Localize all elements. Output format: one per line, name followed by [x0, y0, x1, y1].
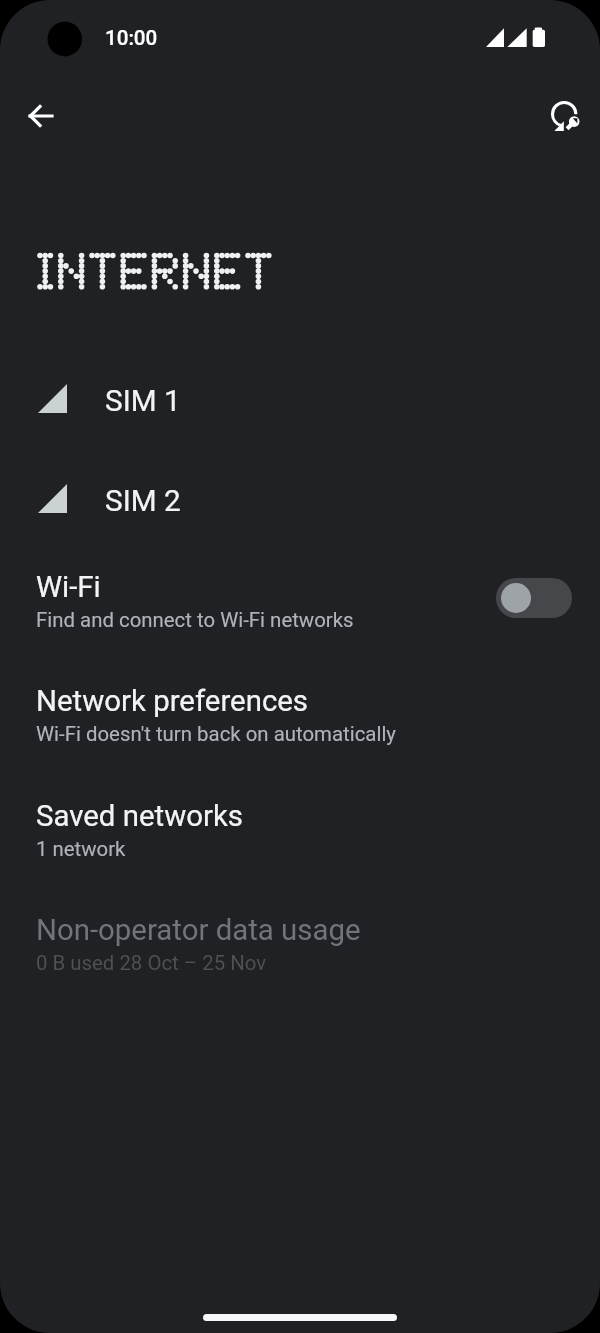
- staticText: 10:00: [105, 26, 158, 50]
- button[interactable]: Saved networks: [0, 776, 600, 881]
- staticText: Non-operator data usage: [36, 913, 361, 947]
- staticText: 1 network: [36, 837, 126, 861]
- staticText: Saved networks: [36, 799, 244, 833]
- button[interactable]: Wi-Fi toggle: [496, 578, 572, 618]
- button[interactable]: SIM 2: [0, 448, 600, 548]
- button[interactable]: Network preferences: [0, 661, 600, 766]
- staticText: 0 B used 28 Oct – 25 Nov: [36, 951, 267, 975]
- button[interactable]: Reset Wi-Fi, mobile and Bluetooth: [542, 95, 588, 141]
- staticText: Find and connect to Wi-Fi networks: [36, 608, 354, 632]
- staticText: Network preferences: [36, 684, 309, 718]
- button[interactable]: Non-operator data usage: [0, 890, 600, 995]
- staticText: Wi-Fi doesn't turn back on automatically: [36, 722, 397, 746]
- button[interactable]: Wi-Fi: [0, 547, 600, 652]
- staticText: SIM 2: [105, 483, 181, 518]
- button[interactable]: SIM 1: [0, 348, 600, 448]
- button[interactable]: Back: [18, 93, 64, 139]
- staticText: Wi-Fi: [36, 570, 101, 604]
- staticText: SIM 1: [105, 383, 181, 418]
